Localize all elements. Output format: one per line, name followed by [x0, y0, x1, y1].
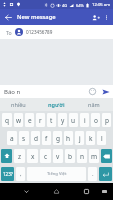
button[interactable]: u — [69, 113, 78, 127]
button[interactable]: x — [27, 149, 38, 163]
button[interactable]: t — [47, 113, 56, 127]
button[interactable]: Back — [2, 11, 15, 24]
button[interactable]: v — [53, 149, 63, 163]
staticText: người — [48, 101, 65, 108]
button[interactable]: i — [80, 113, 89, 127]
button[interactable]: Switch keyboard — [98, 185, 111, 198]
button[interactable]: r — [36, 113, 45, 127]
staticText: i — [84, 116, 86, 125]
button[interactable] — [1, 149, 12, 163]
staticText: n — [80, 152, 85, 161]
staticText: q — [5, 116, 9, 125]
staticText: t — [50, 116, 53, 125]
staticText: f — [45, 134, 48, 143]
button[interactable]: h — [64, 131, 73, 145]
button[interactable]: k — [86, 131, 95, 145]
button[interactable]: j — [75, 131, 84, 145]
staticText: 123? — [3, 171, 13, 177]
staticText: a — [10, 134, 14, 143]
button[interactable]: g — [53, 131, 62, 145]
staticText: u — [71, 116, 76, 125]
button[interactable]: d — [31, 131, 40, 145]
button[interactable]: 123? — [1, 167, 14, 181]
button[interactable]: m — [89, 149, 99, 163]
staticText: nhiều — [11, 101, 26, 108]
button[interactable]: z — [14, 149, 25, 163]
staticText: d — [34, 134, 38, 143]
button[interactable]: b — [65, 149, 75, 163]
staticText: e — [28, 116, 32, 125]
button[interactable]: p — [102, 113, 111, 127]
button[interactable]: a — [7, 131, 17, 145]
staticText: y — [61, 116, 65, 125]
button[interactable]: l — [97, 131, 106, 145]
staticText: c — [44, 152, 48, 161]
staticText: Tiếng Việt — [47, 171, 67, 177]
staticText: . — [92, 170, 94, 178]
button[interactable]: . — [88, 167, 97, 181]
staticText: Báo n — [4, 88, 21, 96]
button[interactable]: nhiều — [0, 98, 37, 111]
staticText: o — [94, 116, 98, 125]
staticText: z — [18, 152, 22, 161]
staticText: To — [6, 29, 12, 36]
staticText: m — [91, 152, 98, 161]
staticText: New message — [17, 13, 56, 21]
button[interactable]: Back — [18, 183, 34, 199]
button[interactable]: Send — [100, 86, 111, 97]
staticText: r — [39, 116, 42, 125]
staticText: 0123456789 — [26, 29, 53, 35]
staticText: x — [31, 152, 35, 161]
button[interactable]: n — [77, 149, 87, 163]
staticText: j — [79, 134, 81, 143]
button[interactable]: năm — [75, 98, 113, 111]
button[interactable]: w — [14, 113, 23, 127]
button[interactable]: s — [19, 131, 29, 145]
staticText: h — [66, 134, 71, 143]
staticText: v — [56, 152, 60, 161]
button[interactable] — [101, 149, 112, 163]
staticText: 64% — [76, 3, 84, 8]
staticText: k — [89, 134, 93, 143]
staticText: w — [16, 116, 22, 125]
staticText: , — [20, 170, 22, 178]
button[interactable]: c — [40, 149, 51, 163]
staticText: 4G — [62, 3, 68, 8]
button[interactable]: q — [2, 113, 12, 127]
button[interactable]: Emoji — [87, 86, 98, 97]
button[interactable]: o — [91, 113, 100, 127]
button[interactable]: Home — [48, 183, 64, 199]
button[interactable]: , — [16, 167, 25, 181]
button[interactable]: người — [37, 98, 75, 111]
button[interactable] — [99, 167, 112, 181]
button[interactable]: f — [42, 131, 51, 145]
button[interactable]: Add person — [89, 11, 102, 24]
staticText: 12:05 am — [92, 2, 111, 8]
staticText: l — [101, 134, 103, 143]
staticText: năm — [88, 101, 100, 108]
staticText: p — [105, 116, 109, 125]
button[interactable]: More options — [102, 13, 111, 22]
button[interactable]: y — [58, 113, 67, 127]
staticText: b — [68, 152, 72, 161]
button[interactable]: Recent apps — [78, 183, 94, 199]
button[interactable]: Tiếng Việt — [27, 167, 86, 181]
button[interactable]: e — [25, 113, 34, 127]
staticText: g — [56, 134, 60, 143]
staticText: s — [22, 134, 26, 143]
